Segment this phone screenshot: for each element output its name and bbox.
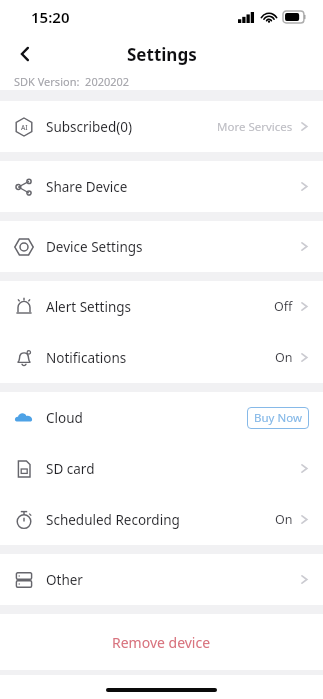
button[interactable]: AI bbox=[0, 101, 323, 152]
staticText: Other bbox=[46, 571, 300, 589]
button[interactable]: Buy Now bbox=[254, 410, 302, 426]
staticText: Share Device bbox=[46, 178, 300, 196]
staticText: More Services bbox=[217, 119, 293, 135]
staticText: Device Settings bbox=[46, 238, 300, 256]
button[interactable]: Back bbox=[6, 35, 44, 73]
staticText: Alert Settings bbox=[46, 298, 274, 316]
staticText: 15:20 bbox=[31, 7, 70, 27]
button[interactable]: Other bbox=[0, 554, 323, 605]
staticText: SD card bbox=[46, 460, 300, 478]
staticText: Cloud bbox=[46, 409, 247, 427]
button[interactable]: SD card bbox=[0, 443, 323, 494]
staticText: Notifications bbox=[46, 349, 275, 367]
button[interactable]: Share Device bbox=[0, 161, 323, 212]
staticText: Scheduled Recording bbox=[46, 511, 275, 529]
button[interactable]: Alert Settings bbox=[0, 281, 323, 332]
staticText: Off bbox=[274, 298, 293, 315]
staticText: AI bbox=[21, 123, 28, 132]
button[interactable]: Remove device bbox=[0, 614, 323, 670]
staticText: Settings bbox=[127, 43, 197, 66]
button[interactable]: Cloud bbox=[0, 392, 323, 443]
staticText: Subscribed(0) bbox=[46, 118, 217, 136]
button[interactable]: Notifications bbox=[0, 332, 323, 383]
staticText: Buy Now bbox=[254, 410, 302, 426]
staticText: On bbox=[275, 349, 293, 366]
button[interactable]: Scheduled Recording bbox=[0, 494, 323, 545]
staticText: Remove device bbox=[112, 633, 211, 652]
staticText: On bbox=[275, 511, 293, 528]
button[interactable]: Device Settings bbox=[0, 221, 323, 272]
staticText: SDK Version: 2020202 bbox=[14, 74, 130, 89]
